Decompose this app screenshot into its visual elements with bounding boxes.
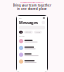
staticText: All [20,31,21,33]
button[interactable] [17,38,47,44]
staticText: Bring your team together [13,4,51,7]
button[interactable]: Teams [34,31,42,34]
staticText: RECENT [19,35,25,37]
button[interactable]: All [19,31,23,34]
staticText: 9:41 [19,17,22,19]
button[interactable] [17,44,47,51]
button[interactable]: Unread [24,31,33,34]
staticText: TEAMWORK MADE SIMPLE AND FAST [20,2,44,3]
staticText: in one shared place [17,7,47,11]
staticText: Unread [25,31,31,33]
staticText: Teams [35,31,40,33]
button[interactable] [17,51,47,58]
button[interactable] [17,58,47,65]
staticText: Messages [19,20,38,25]
